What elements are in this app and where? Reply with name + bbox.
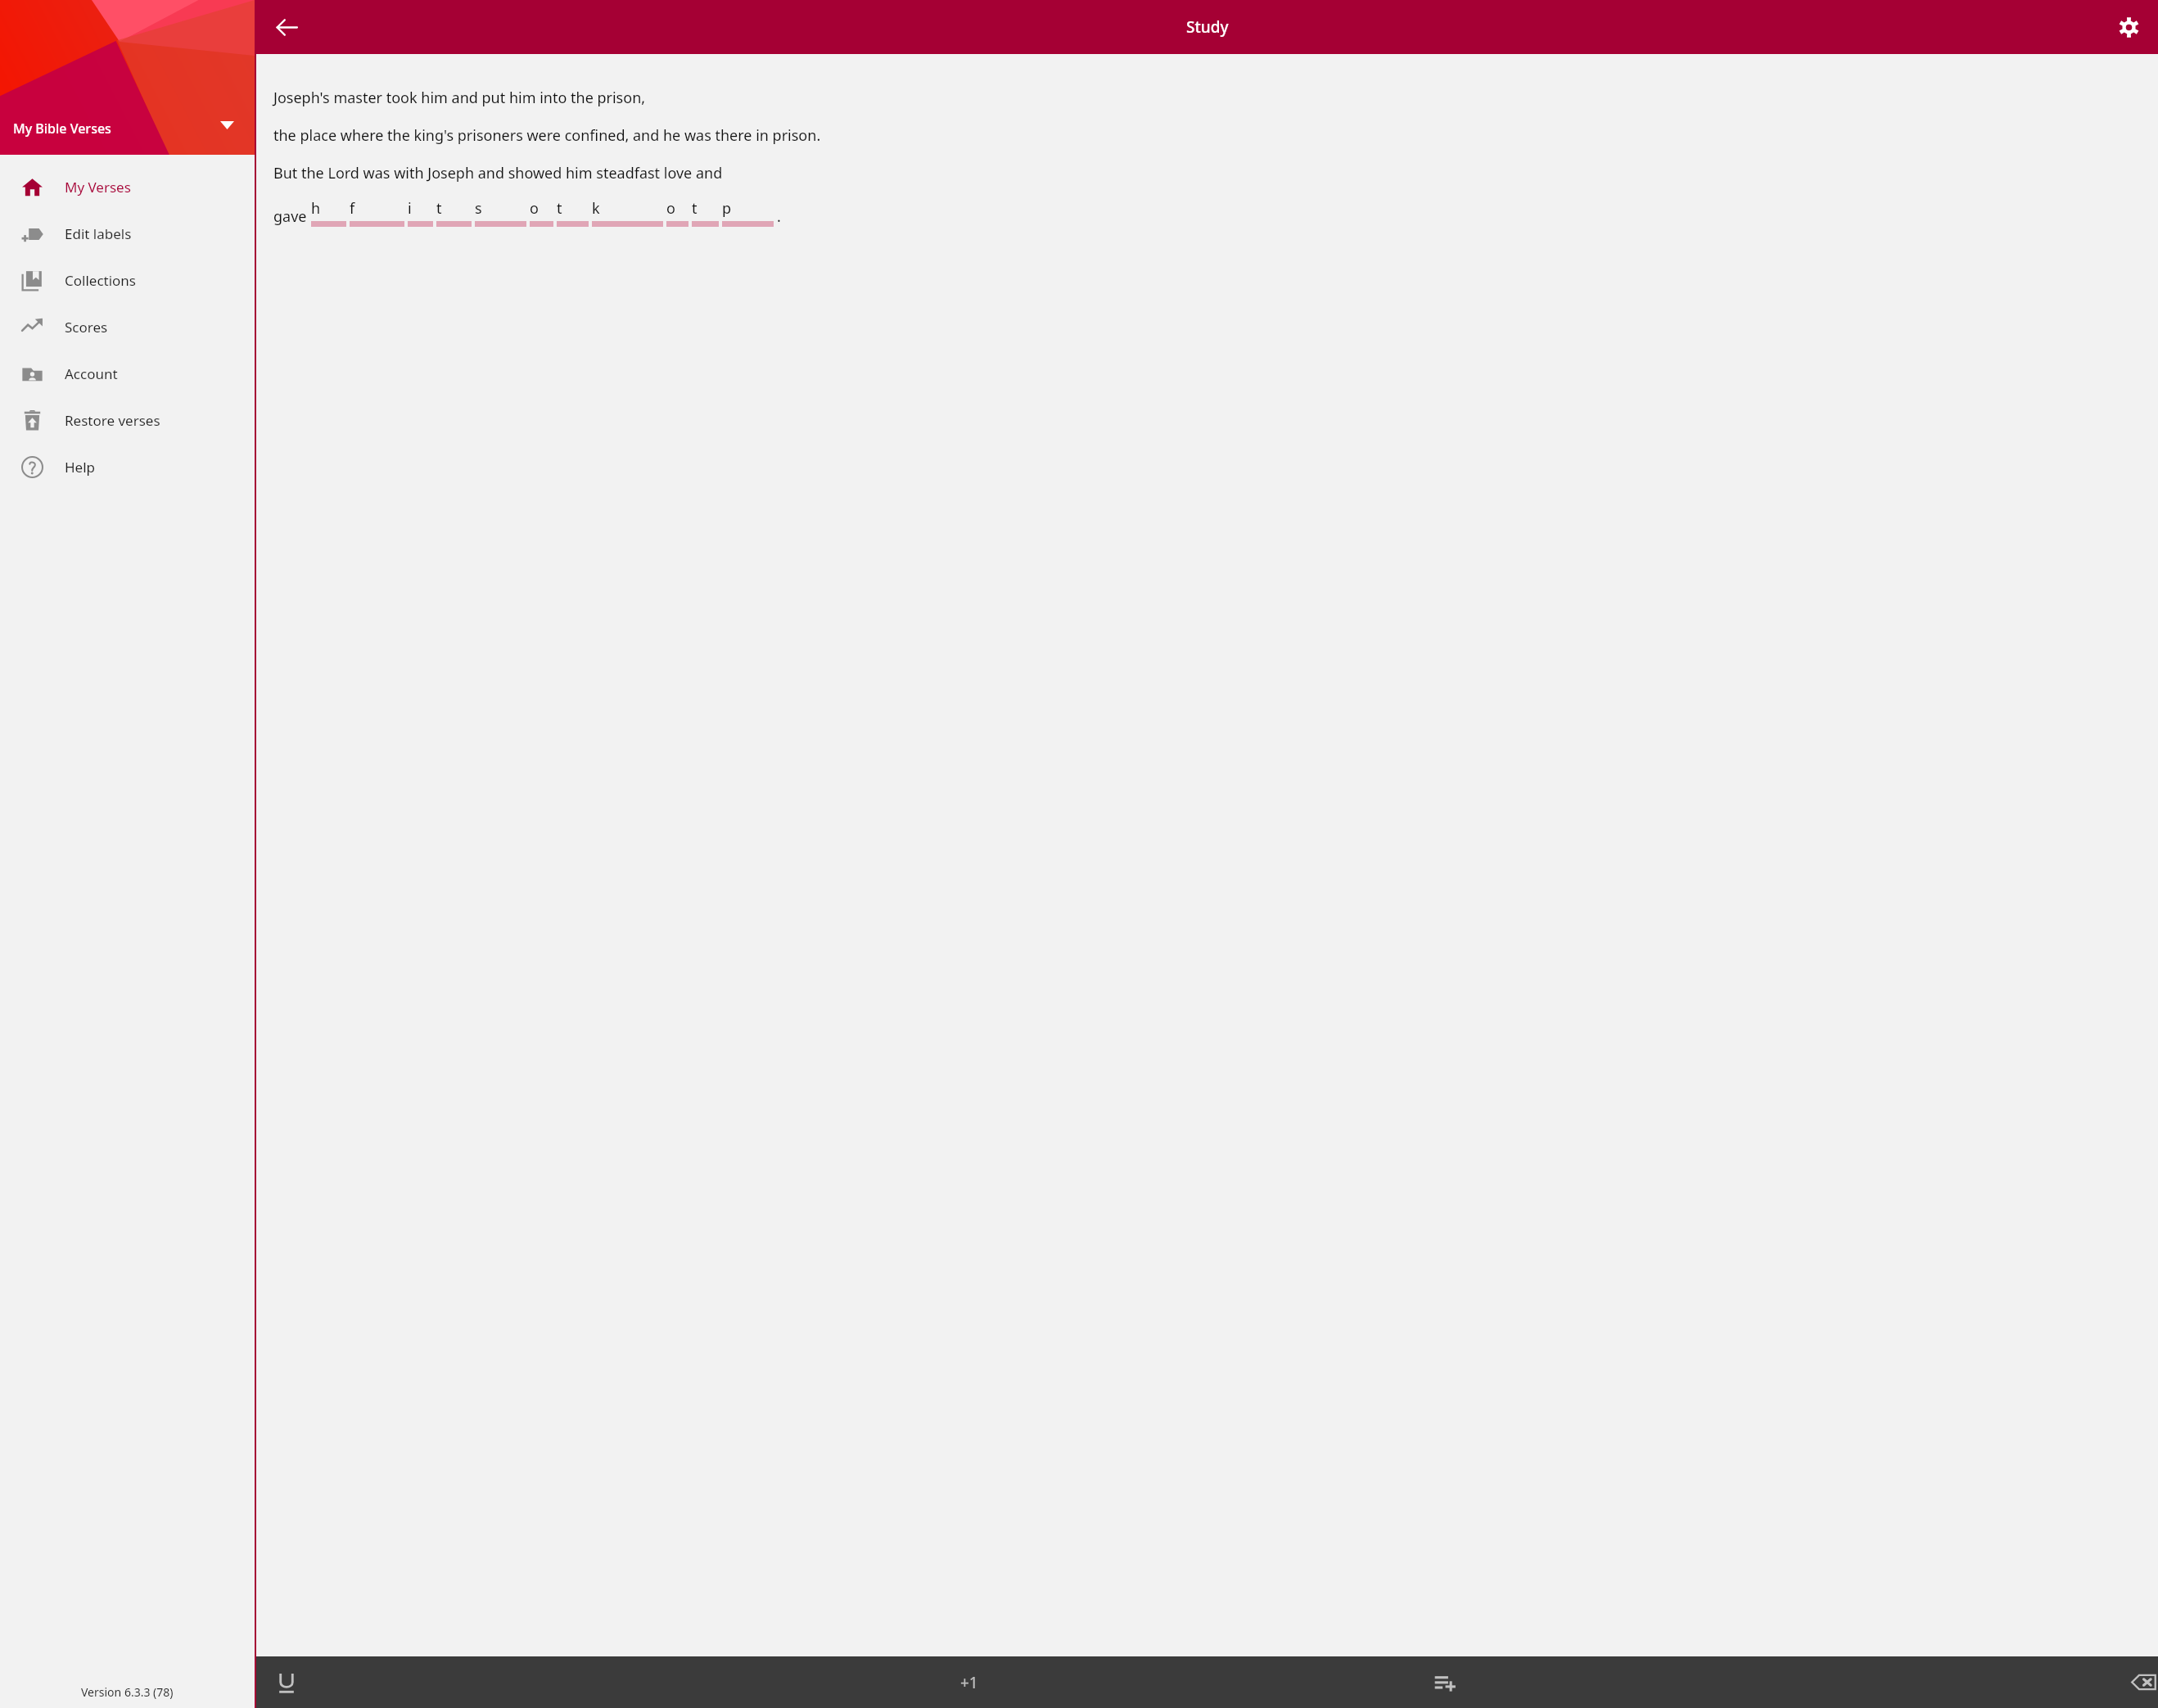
staticText: t — [436, 198, 442, 219]
button[interactable]: Settings — [2110, 8, 2147, 46]
staticText: But the Lord was with Joseph and showed … — [273, 163, 723, 183]
staticText: f — [350, 198, 355, 219]
staticText: Study — [1186, 16, 1229, 38]
staticText: o — [530, 198, 539, 219]
button[interactable]: Restore verses — [0, 397, 255, 444]
button[interactable]: Back — [268, 8, 305, 46]
button[interactable]: My Verses — [0, 164, 255, 210]
staticText: s — [475, 198, 482, 219]
staticText: k — [592, 198, 600, 219]
button[interactable]: +1 — [731, 1656, 1207, 1708]
staticText: o — [666, 198, 675, 219]
staticText: . — [777, 206, 781, 227]
staticText: h — [311, 198, 321, 219]
staticText: +1 — [960, 1672, 978, 1693]
staticText: Help — [65, 458, 96, 477]
staticText: Restore verses — [65, 411, 160, 430]
button[interactable]: Account — [0, 350, 255, 397]
staticText: Joseph's master took him and put him int… — [273, 88, 646, 108]
button[interactable]: My Bible Verses — [0, 0, 255, 155]
button[interactable]: Reveal letter — [256, 1656, 731, 1708]
staticText: p — [722, 198, 732, 219]
staticText: Account — [65, 364, 118, 383]
staticText: Edit labels — [65, 224, 132, 243]
staticText: t — [692, 198, 698, 219]
button[interactable]: Collections — [0, 257, 255, 304]
button[interactable]: Scores — [0, 304, 255, 350]
staticText: Collections — [65, 271, 137, 290]
button[interactable]: Switch account — [215, 114, 238, 137]
staticText: My Verses — [65, 178, 131, 197]
staticText: gave — [273, 206, 311, 227]
button[interactable]: Help — [0, 444, 255, 490]
staticText: Version 6.3.3 (78) — [81, 1684, 174, 1700]
button[interactable]: Edit labels — [0, 210, 255, 257]
staticText: i — [408, 198, 412, 219]
button[interactable]: Add to list — [1207, 1656, 1682, 1708]
staticText: the place where the king's prisoners wer… — [273, 125, 821, 146]
button[interactable]: Backspace — [1682, 1656, 2158, 1708]
staticText: My Bible Verses — [13, 120, 111, 138]
staticText: t — [557, 198, 562, 219]
staticText: Scores — [65, 318, 108, 337]
